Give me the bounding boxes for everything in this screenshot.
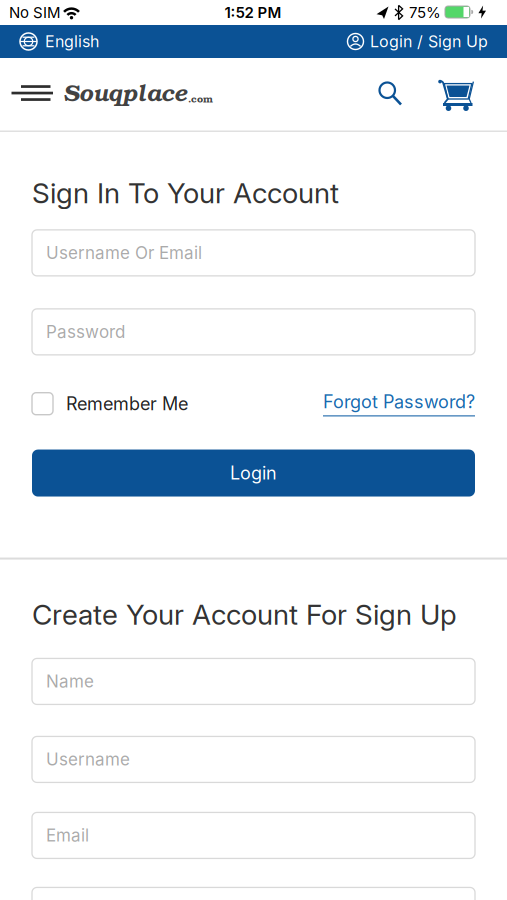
staticText: Create Your Account For Sign Up (32, 598, 457, 631)
staticText: .com (188, 91, 213, 106)
button[interactable]: Souqplace.com home (63, 75, 213, 109)
button[interactable]: Login (32, 450, 475, 497)
staticText: Username (46, 749, 130, 770)
staticText: Souqplace (63, 75, 187, 109)
button[interactable]: Login / Sign Up (347, 32, 488, 51)
button[interactable]: Cart (438, 79, 476, 111)
staticText: Sign In To Your Account (32, 176, 339, 210)
staticText: Remember Me (66, 393, 188, 415)
staticText: Password (46, 322, 125, 342)
staticText: 75% (409, 3, 441, 21)
staticText: Email (46, 825, 89, 846)
button[interactable]: Search (378, 81, 404, 107)
staticText: Login / Sign Up (370, 32, 488, 51)
staticText: Username Or Email (46, 243, 202, 263)
button[interactable]: Forgot Password? (323, 391, 475, 417)
staticText: 1:52 PM (224, 3, 281, 21)
staticText: English (45, 32, 99, 51)
staticText: Login (230, 462, 277, 484)
staticText: No SIM (9, 3, 61, 21)
button[interactable]: Remember Me (32, 393, 188, 415)
staticText: Name (46, 671, 94, 692)
button[interactable]: English (19, 32, 99, 51)
button[interactable]: Menu (11, 82, 53, 104)
staticText: Forgot Password? (323, 391, 475, 413)
